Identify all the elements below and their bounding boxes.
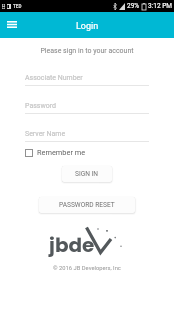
staticText: Please sign in to your account bbox=[0, 47, 174, 55]
button[interactable]: SIGN IN bbox=[62, 166, 112, 182]
staticText: TED bbox=[13, 4, 22, 9]
button[interactable]: Open navigation menu bbox=[3, 15, 21, 33]
staticText: Login bbox=[76, 21, 99, 32]
button[interactable]: PASSWORD RESET bbox=[39, 197, 135, 213]
staticText: Password bbox=[25, 102, 56, 110]
staticText: jbde bbox=[49, 231, 95, 259]
staticText: Server Name bbox=[25, 130, 66, 138]
staticText: 29% bbox=[127, 2, 140, 10]
button[interactable]: Remember me bbox=[25, 148, 86, 157]
staticText: SIGN IN bbox=[75, 170, 99, 178]
staticText: PASSWORD RESET bbox=[59, 201, 115, 209]
staticText: 3:12 PM bbox=[148, 2, 172, 10]
staticText: Associate Number bbox=[25, 74, 83, 82]
staticText: Remember me bbox=[37, 148, 86, 157]
staticText: © 2016 JB Developers, Inc bbox=[0, 265, 174, 272]
